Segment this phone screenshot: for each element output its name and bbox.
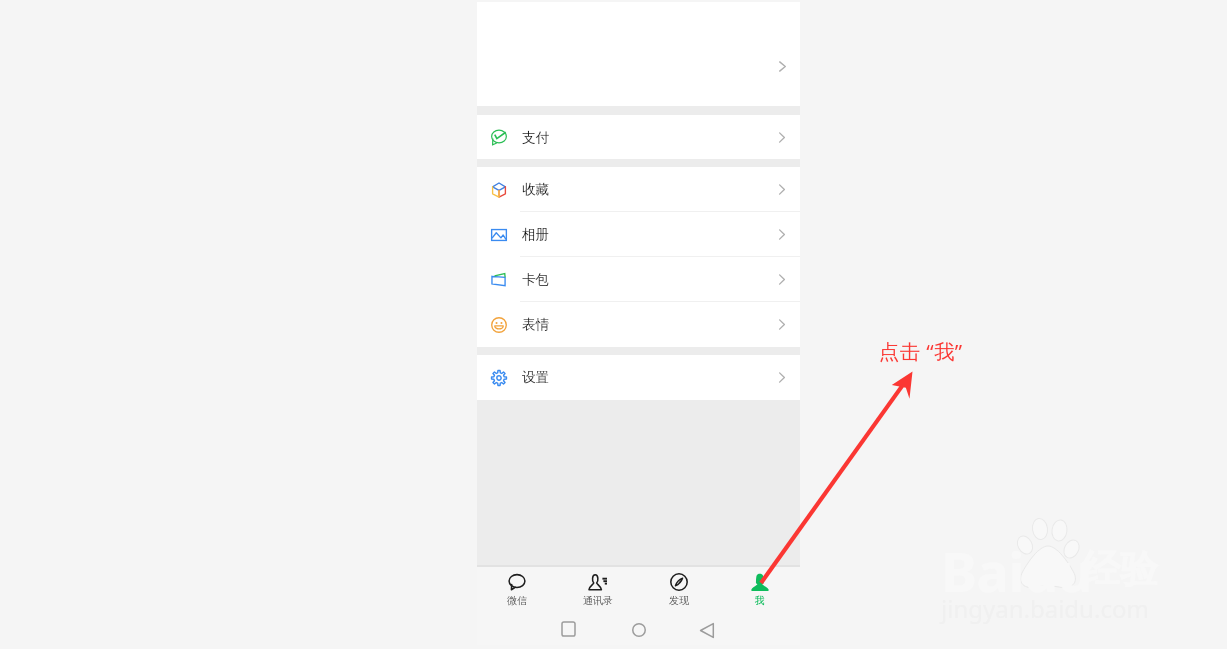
button[interactable]: 收藏 — [477, 167, 800, 212]
button[interactable]: 支付 — [477, 115, 800, 159]
button[interactable]: WeChat — [477, 565, 557, 612]
button[interactable]: Recents — [558, 618, 579, 639]
staticText: 点击 “我” — [879, 337, 963, 365]
staticText: 通讯录 — [583, 594, 613, 607]
staticText: 发现 — [669, 594, 689, 607]
button[interactable]: Home — [628, 619, 649, 640]
button[interactable]: 卡包 — [477, 257, 800, 302]
staticText: 相册 — [522, 226, 550, 243]
button[interactable]: Discover — [638, 565, 719, 612]
button[interactable]: Me — [719, 565, 800, 612]
staticText: 表情 — [522, 316, 550, 333]
staticText: 收藏 — [522, 181, 550, 198]
staticText: 我 — [755, 594, 765, 607]
button[interactable]: 表情 — [477, 302, 800, 347]
other: Open profile — [779, 61, 786, 72]
button[interactable]: 相册 — [477, 212, 800, 257]
staticText: 微信 — [507, 594, 527, 607]
staticText: 卡包 — [522, 271, 550, 288]
staticText: 支付 — [522, 129, 550, 146]
button[interactable]: 设置 — [477, 355, 800, 400]
staticText: 设置 — [522, 369, 550, 386]
button[interactable]: Back — [696, 619, 717, 642]
button[interactable]: Contacts — [557, 565, 638, 612]
